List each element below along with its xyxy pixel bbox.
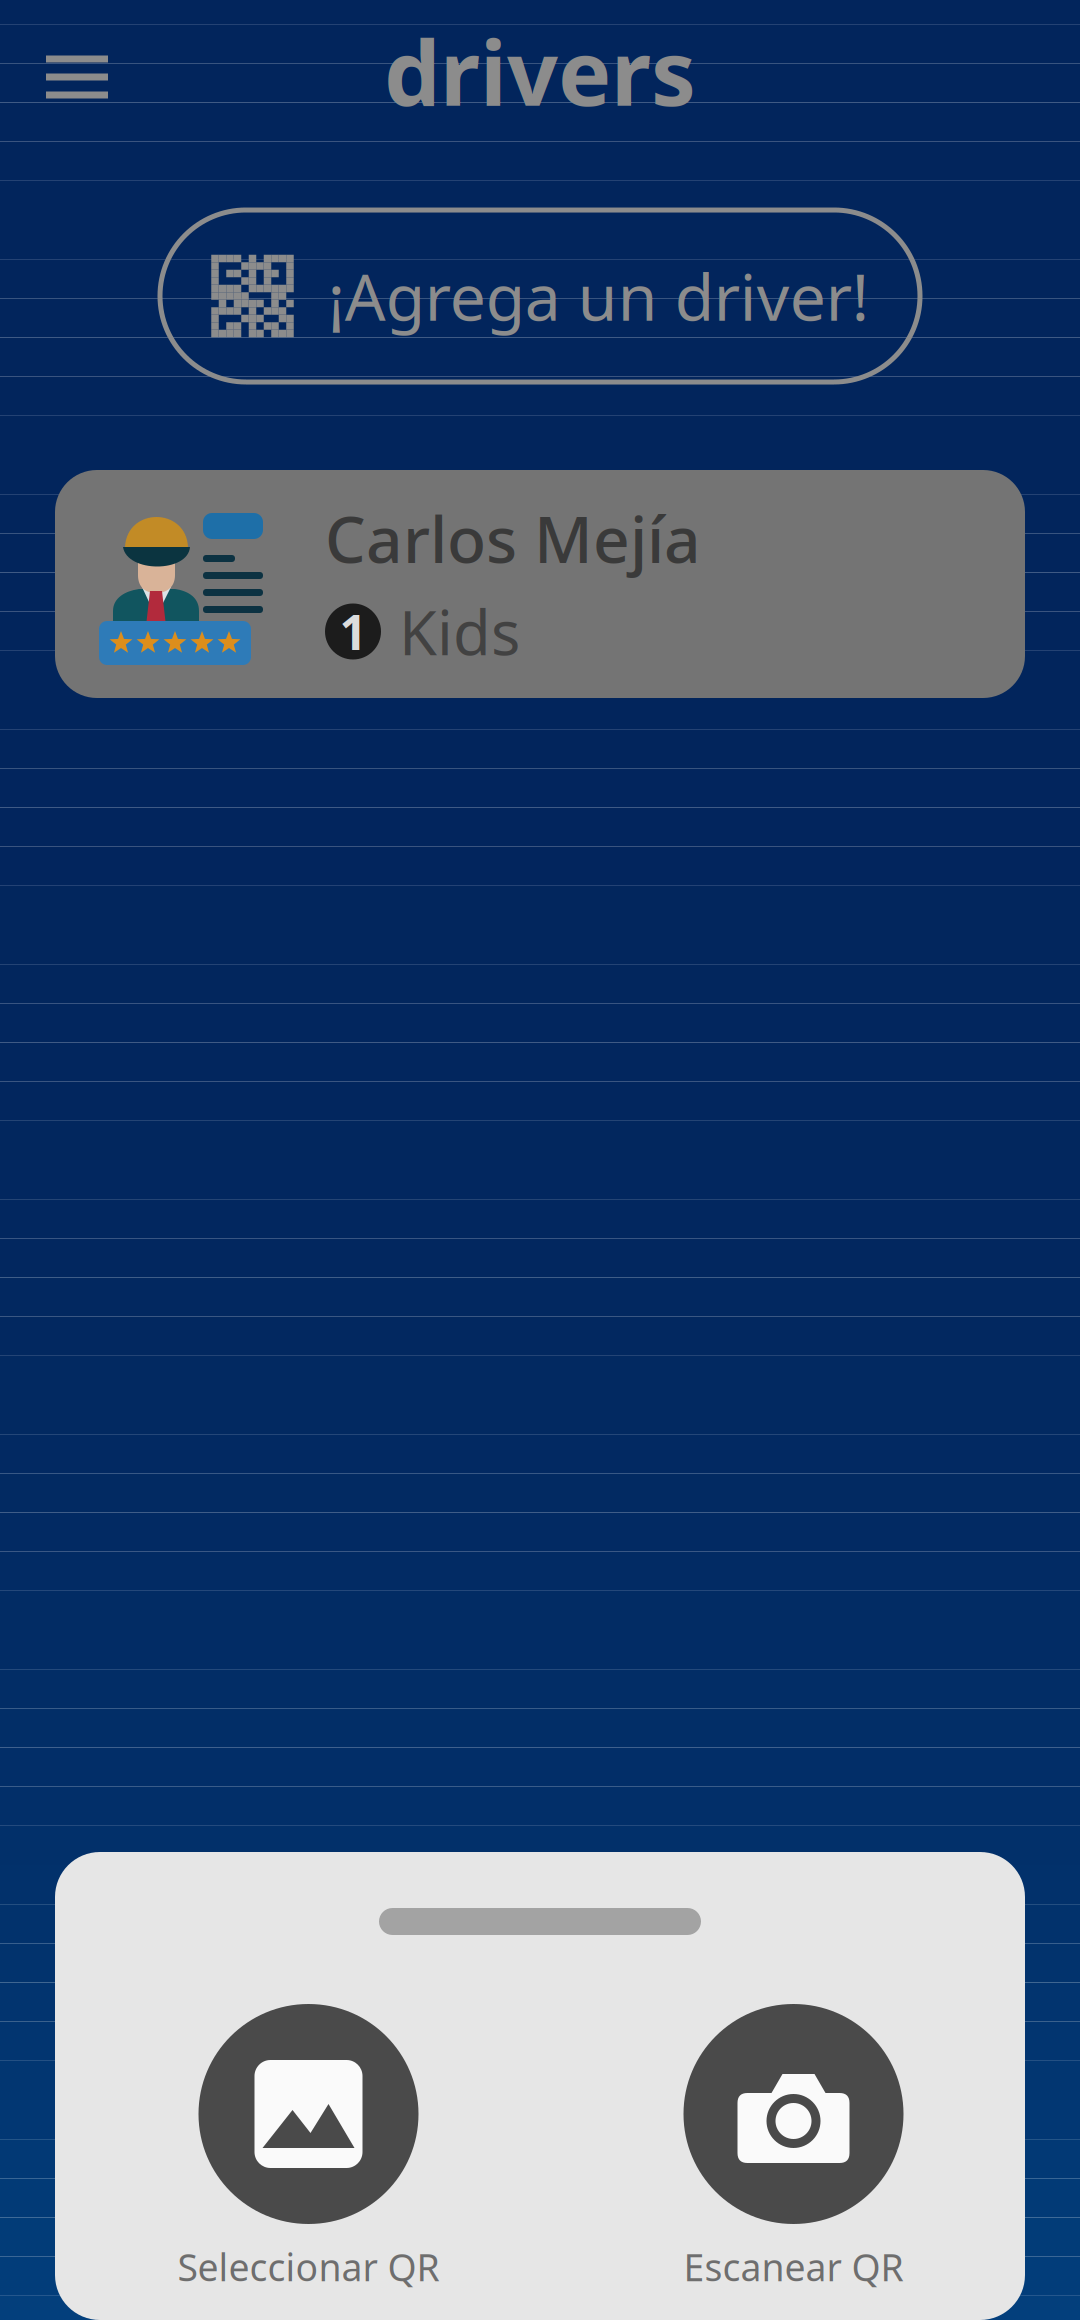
staticText: Carlos Mejía bbox=[325, 496, 701, 581]
staticText: Seleccionar QR bbox=[177, 2242, 439, 2292]
button[interactable]: Menu bbox=[0, 26, 132, 121]
button[interactable]: Carlos Mejía bbox=[55, 470, 1025, 698]
button[interactable]: Seleccionar QR bbox=[66, 2004, 551, 2292]
staticText: drivers bbox=[384, 12, 696, 130]
staticText: ¡Agrega un driver! bbox=[328, 253, 869, 338]
staticText: Kids bbox=[399, 591, 520, 672]
button[interactable]: Escanear QR bbox=[551, 2004, 1036, 2292]
staticText: Escanear QR bbox=[683, 2242, 903, 2292]
button[interactable]: ¡Agrega un driver! bbox=[160, 210, 920, 382]
staticText: 1 bbox=[339, 600, 366, 663]
